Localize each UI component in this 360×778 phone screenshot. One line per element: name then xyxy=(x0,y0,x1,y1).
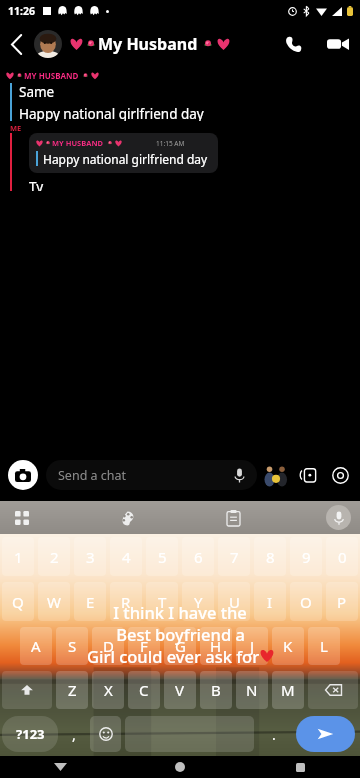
button[interactable]: 5 xyxy=(146,537,178,576)
button[interactable]: Shift xyxy=(2,671,52,709)
staticText: ME xyxy=(10,123,22,133)
button[interactable]: K xyxy=(272,627,304,665)
staticText: P xyxy=(337,592,347,612)
button[interactable]: Friends xyxy=(264,463,288,487)
button[interactable]: Send xyxy=(296,716,355,752)
staticText: F xyxy=(140,636,148,656)
staticText: G xyxy=(175,636,186,656)
button[interactable]: Keyboard options xyxy=(10,506,34,530)
staticText: . xyxy=(272,725,276,744)
staticText: I xyxy=(267,592,273,612)
button[interactable]: U xyxy=(218,582,250,621)
staticText: 3 xyxy=(86,547,95,567)
button[interactable]: Voice call xyxy=(272,22,316,66)
staticText: My Husband xyxy=(98,33,198,55)
staticText: A xyxy=(31,636,41,656)
button[interactable]: W xyxy=(38,582,70,621)
button[interactable]: MY HUSBAND xyxy=(36,138,208,167)
staticText: L xyxy=(320,636,328,656)
button[interactable]: 0 xyxy=(326,537,358,576)
button[interactable]: Profile xyxy=(34,30,62,58)
button[interactable]: Theme xyxy=(114,505,140,531)
button[interactable]: Back xyxy=(0,22,34,66)
button[interactable]: X xyxy=(92,671,124,709)
button[interactable]: B xyxy=(200,671,232,709)
staticText: Girl could ever ask for xyxy=(87,645,260,667)
button[interactable]: G xyxy=(164,627,196,665)
staticText: J xyxy=(250,636,255,656)
staticText: 8 xyxy=(266,547,275,567)
button[interactable]: D xyxy=(92,627,124,665)
staticText: Same xyxy=(19,83,55,101)
button[interactable]: My Husband xyxy=(70,22,272,66)
button[interactable]: Space xyxy=(125,716,254,752)
button[interactable]: ?123 xyxy=(2,716,58,752)
button[interactable]: Backspace xyxy=(308,671,358,709)
button[interactable]: I xyxy=(254,582,286,621)
staticText: U xyxy=(229,592,240,612)
button[interactable]: Z xyxy=(56,671,88,709)
staticText: V xyxy=(175,680,185,700)
button[interactable]: Send a chat xyxy=(46,460,257,490)
button[interactable]: A xyxy=(20,627,52,665)
staticText: MY HUSBAND xyxy=(52,138,104,148)
staticText: 4 xyxy=(122,547,131,567)
button[interactable]: S xyxy=(56,627,88,665)
staticText: M xyxy=(281,680,295,700)
button[interactable]: Emoji xyxy=(90,716,121,752)
staticText: , xyxy=(72,725,76,744)
button[interactable]: V xyxy=(164,671,196,709)
button[interactable]: 1 xyxy=(2,537,34,576)
button[interactable]: 9 xyxy=(290,537,322,576)
button[interactable]: Clipboard xyxy=(220,505,246,531)
button[interactable]: , xyxy=(60,712,88,756)
staticText: B xyxy=(211,680,221,700)
button[interactable]: Y xyxy=(182,582,214,621)
button[interactable]: H xyxy=(200,627,232,665)
staticText: I think I have the xyxy=(113,601,247,623)
staticText: 0 xyxy=(338,547,347,567)
button[interactable]: 7 xyxy=(218,537,250,576)
button[interactable]: O xyxy=(290,582,322,621)
button[interactable]: 2 xyxy=(38,537,70,576)
button[interactable]: L xyxy=(308,627,340,665)
staticText: 9 xyxy=(302,547,311,567)
staticText: 6 xyxy=(194,547,203,567)
button[interactable]: R xyxy=(110,582,142,621)
staticText: Happy national girlfriend day xyxy=(19,105,204,121)
staticText: 11:15 AM xyxy=(156,139,185,148)
staticText: Happy national girlfriend day xyxy=(43,151,208,167)
button[interactable]: T xyxy=(146,582,178,621)
button[interactable]: N xyxy=(236,671,268,709)
button[interactable]: 4 xyxy=(110,537,142,576)
staticText: Y xyxy=(194,592,203,612)
button[interactable]: Location xyxy=(328,463,352,487)
button[interactable]: 3 xyxy=(74,537,106,576)
staticText: 1 xyxy=(14,547,23,567)
button[interactable]: C xyxy=(128,671,160,709)
button[interactable]: E xyxy=(74,582,106,621)
staticText: Send a chat xyxy=(58,467,234,484)
button[interactable]: Home xyxy=(120,756,240,778)
button[interactable]: M xyxy=(272,671,304,709)
button[interactable]: F xyxy=(128,627,160,665)
button[interactable]: Back xyxy=(0,756,120,778)
button[interactable]: Recents xyxy=(240,756,360,778)
button[interactable]: 8 xyxy=(254,537,286,576)
staticText: S xyxy=(68,636,77,656)
button[interactable]: Voice input xyxy=(326,505,351,530)
staticText: E xyxy=(86,592,95,612)
button[interactable]: Camera xyxy=(8,460,38,490)
button[interactable]: Q xyxy=(2,582,34,621)
button[interactable]: J xyxy=(236,627,268,665)
staticText: 5 xyxy=(158,547,167,567)
button[interactable]: 6 xyxy=(182,537,214,576)
button[interactable]: . xyxy=(256,712,291,756)
staticText: Best boyfriend a xyxy=(116,623,245,645)
staticText: C xyxy=(139,680,149,700)
button[interactable]: P xyxy=(326,582,358,621)
button[interactable]: Stickers xyxy=(296,463,320,487)
button[interactable]: Video call xyxy=(316,22,360,66)
staticText: ?123 xyxy=(16,725,45,743)
staticText: 2 xyxy=(50,547,59,567)
